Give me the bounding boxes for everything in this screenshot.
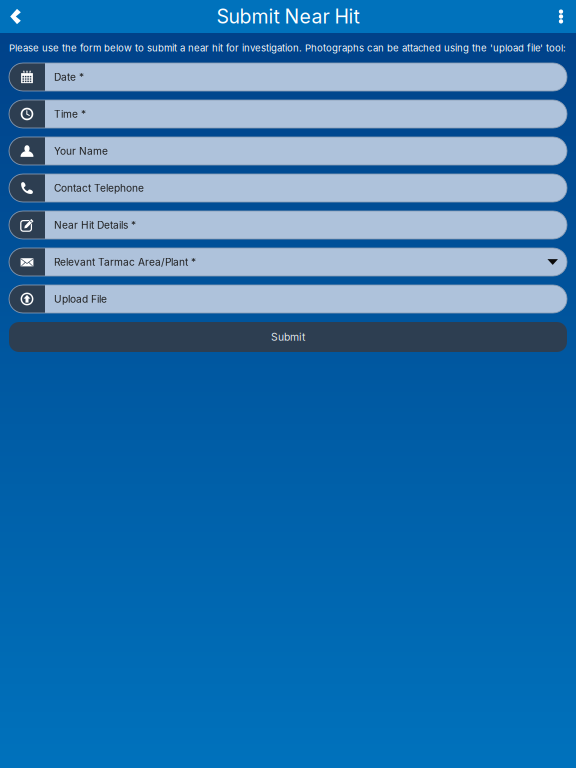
staticText: Contact Telephone — [54, 182, 144, 194]
staticText: Near Hit Details * — [54, 219, 136, 231]
staticText: Submit — [271, 331, 305, 343]
staticText: Relevant Tarmac Area/Plant * — [54, 256, 196, 268]
button[interactable]: Back — [0, 0, 31, 33]
button[interactable]: Your Name — [9, 137, 567, 165]
button[interactable]: Date * — [9, 63, 567, 91]
button[interactable]: Time * — [9, 100, 567, 128]
button[interactable]: Near Hit Details * — [9, 211, 567, 239]
button[interactable]: Upload File — [9, 285, 567, 313]
staticText: Your Name — [54, 145, 108, 157]
button[interactable]: More options — [546, 0, 576, 33]
staticText: Date * — [54, 71, 84, 83]
button[interactable]: Submit — [9, 322, 567, 352]
staticText: Please use the form below to submit a ne… — [9, 42, 566, 54]
staticText: Time * — [54, 108, 86, 120]
button[interactable]: Relevant Tarmac Area/Plant * — [9, 248, 567, 276]
button[interactable]: Contact Telephone — [9, 174, 567, 202]
staticText: Upload File — [54, 293, 107, 305]
staticText: Submit Near Hit — [216, 5, 359, 28]
